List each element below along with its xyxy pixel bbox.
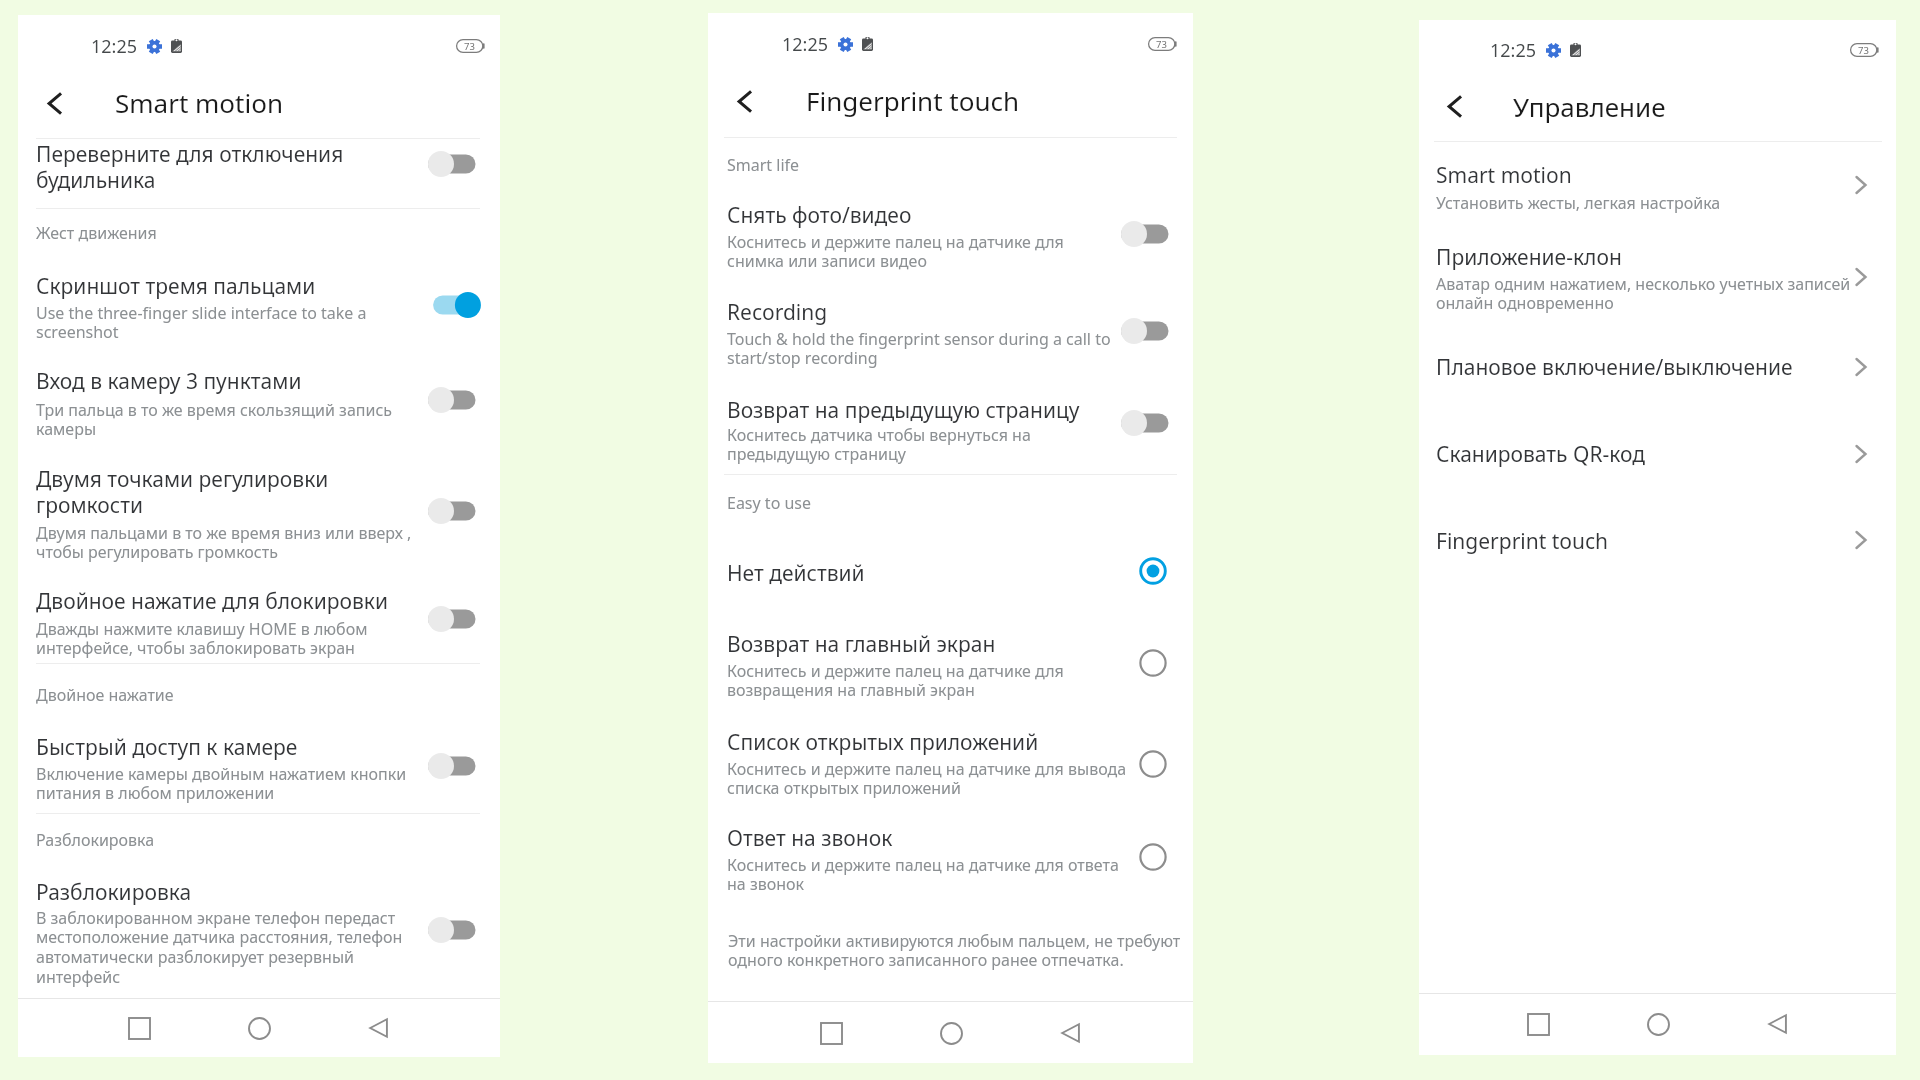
button[interactable]: Back	[352, 1001, 406, 1055]
staticText: Быстрый доступ к камере	[36, 733, 298, 762]
staticText: Коснитесь датчика чтобы вернуться на пре…	[727, 424, 1031, 465]
button[interactable]: Fingerprint touch	[1419, 516, 1896, 566]
button[interactable]: Smart motion	[1419, 150, 1896, 212]
button[interactable]: Back	[722, 79, 766, 123]
staticText: Коснитесь и держите палец на датчике для…	[727, 231, 1064, 272]
staticText: Use the three-finger slide interface to …	[36, 302, 367, 343]
button[interactable]: Нет действий	[708, 548, 1193, 594]
button[interactable]: Двойное нажатие для блокировки	[18, 570, 500, 660]
staticText: Нет действий	[727, 559, 865, 588]
button[interactable]: Разблокировка	[18, 868, 500, 988]
staticText: Приложение-клон	[1436, 243, 1622, 272]
button[interactable]: Home	[924, 1006, 978, 1060]
staticText: Двумя точками регулировки громкости	[36, 465, 329, 520]
button[interactable]: Back	[32, 81, 76, 125]
staticText: Smart life	[727, 154, 800, 176]
button[interactable]: Список открытых приложений	[708, 714, 1193, 794]
staticText: Двойное нажатие	[36, 684, 174, 706]
staticText: Коснитесь и держите палец на датчике для…	[727, 758, 1127, 799]
button[interactable]: Сканировать QR-код	[1419, 430, 1896, 480]
staticText: Возврат на предыдущую страницу	[727, 396, 1080, 425]
staticText: Разблокировка	[36, 878, 192, 907]
staticText: Вход в камеру 3 пунктами	[36, 367, 302, 396]
button[interactable]: Recent apps	[112, 1001, 166, 1055]
button[interactable]: Двумя точками регулировки громкости	[18, 450, 500, 560]
staticText: Easy to use	[727, 492, 812, 514]
staticText: 12:25	[91, 34, 138, 58]
staticText: 73	[1156, 38, 1167, 51]
staticText: Коснитесь и держите палец на датчике для…	[727, 660, 1064, 701]
staticText: 73	[1858, 44, 1869, 57]
button[interactable]: Приложение-клон	[1419, 232, 1896, 314]
button[interactable]: Снять фото/видео	[708, 190, 1193, 270]
staticText: Снять фото/видео	[727, 201, 912, 230]
button[interactable]: Переверните для отключения будильника	[18, 139, 500, 208]
staticText: Сканировать QR-код	[1436, 440, 1645, 469]
staticText: Fingerprint touch	[806, 83, 1020, 118]
button[interactable]: Recent apps	[1511, 997, 1565, 1051]
staticText: 73	[464, 40, 475, 53]
staticText: В заблокированном экране телефон передас…	[36, 907, 403, 988]
button[interactable]: Home	[232, 1001, 286, 1055]
staticText: Разблокировка	[36, 829, 155, 851]
staticText: Управление	[1513, 89, 1666, 124]
button[interactable]: Скриншот тремя пальцами	[18, 262, 500, 344]
staticText: Ответ на звонок	[727, 824, 893, 853]
button[interactable]: Home	[1631, 997, 1685, 1051]
staticText: Smart motion	[115, 85, 283, 120]
staticText: 12:25	[1490, 38, 1537, 62]
button[interactable]: Плановое включение/выключение	[1419, 342, 1896, 392]
staticText: Smart motion	[1436, 161, 1572, 190]
staticText: Переверните для отключения будильника	[36, 140, 344, 195]
button[interactable]: Быстрый доступ к камере	[18, 720, 500, 808]
button[interactable]: Ответ на звонок	[708, 812, 1193, 892]
staticText: Двумя пальцами в то же время вниз или вв…	[36, 522, 412, 563]
staticText: Коснитесь и держите палец на датчике для…	[727, 854, 1119, 895]
staticText: Три пальца в то же время скользящий запи…	[36, 399, 393, 440]
button[interactable]: Вход в камеру 3 пунктами	[18, 350, 500, 440]
button[interactable]: Возврат на предыдущую страницу	[708, 382, 1193, 462]
staticText: Список открытых приложений	[727, 728, 1039, 757]
button[interactable]: Back	[1751, 997, 1805, 1051]
staticText: Возврат на главный экран	[727, 630, 996, 659]
staticText: Установить жесты, легкая настройка	[1436, 192, 1721, 214]
staticText: Дважды нажмите клавишу HOME в любом инте…	[36, 618, 368, 659]
staticText: Recording	[727, 298, 828, 327]
staticText: Двойное нажатие для блокировки	[36, 587, 389, 616]
staticText: Fingerprint touch	[1436, 527, 1609, 556]
staticText: Эти настройки активируются любым пальцем…	[728, 930, 1181, 971]
button[interactable]: Возврат на главный экран	[708, 618, 1193, 698]
staticText: Включение камеры двойным нажатием кнопки…	[36, 763, 407, 804]
staticText: Touch & hold the fingerprint sensor duri…	[727, 328, 1111, 369]
button[interactable]: Recording	[708, 285, 1193, 365]
staticText: 12:25	[782, 32, 829, 56]
staticText: Аватар одним нажатием, несколько учетных…	[1436, 273, 1851, 314]
button[interactable]: Recent apps	[804, 1006, 858, 1060]
staticText: Скриншот тремя пальцами	[36, 272, 316, 301]
staticText: Жест движения	[36, 222, 157, 244]
staticText: Плановое включение/выключение	[1436, 353, 1793, 382]
button[interactable]: Back	[1432, 84, 1476, 128]
button[interactable]: Back	[1044, 1006, 1098, 1060]
